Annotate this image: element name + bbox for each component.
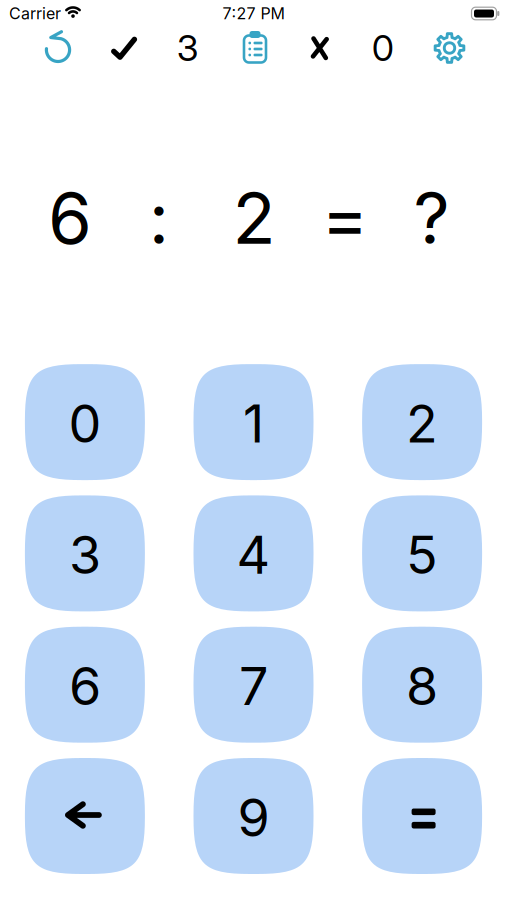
button[interactable]: 1 [193,364,313,480]
button[interactable]: Settings [435,33,464,62]
staticText: 1 [243,392,264,455]
button[interactable]: 9 [193,758,313,874]
staticText: 4 [236,523,270,586]
button[interactable]: 4 [193,495,313,611]
staticText: 5 [406,523,438,586]
staticText: ? [413,175,449,261]
staticText: 7:27 PM [222,4,284,23]
staticText: 0 [372,26,394,70]
staticText: : [149,175,169,261]
button[interactable]: 5 [362,495,482,611]
button[interactable]: 7 [193,627,313,743]
button[interactable]: 0 [25,364,145,480]
button[interactable]: 8 [362,627,482,743]
button[interactable]: 6 [25,627,145,743]
staticText: 3 [177,26,199,70]
button[interactable]: Restart [47,33,76,63]
staticText: Carrier [9,4,61,23]
staticText: 2 [406,392,438,455]
button[interactable]: 2 [362,364,482,480]
staticText: 3 [69,523,101,586]
staticText: 9 [237,786,269,849]
staticText: 6 [48,175,92,261]
staticText: 2 [232,175,275,261]
staticText: 8 [406,655,438,718]
staticText: 7 [239,655,268,718]
button[interactable]: Equals [362,758,482,874]
staticText: 6 [69,655,101,718]
button[interactable]: 3 [25,495,145,611]
staticText: = [321,175,368,261]
button[interactable]: History [246,31,272,65]
button[interactable]: Backspace [25,758,145,874]
staticText: 0 [68,392,101,455]
